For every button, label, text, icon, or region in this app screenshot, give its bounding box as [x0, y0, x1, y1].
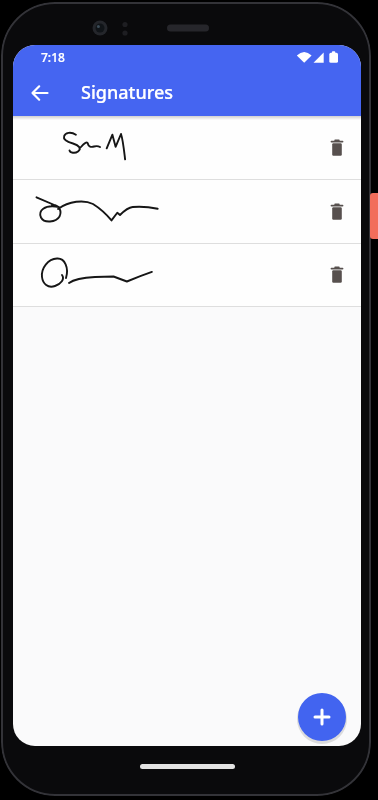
button[interactable] — [325, 136, 349, 160]
staticText: 7:18 — [41, 49, 65, 65]
button[interactable] — [325, 263, 349, 287]
staticText: Signatures — [81, 80, 174, 105]
button[interactable] — [13, 180, 361, 243]
button[interactable] — [13, 116, 361, 179]
button[interactable] — [325, 200, 349, 224]
button[interactable] — [13, 244, 361, 306]
button[interactable] — [298, 693, 346, 741]
button[interactable] — [20, 73, 60, 113]
